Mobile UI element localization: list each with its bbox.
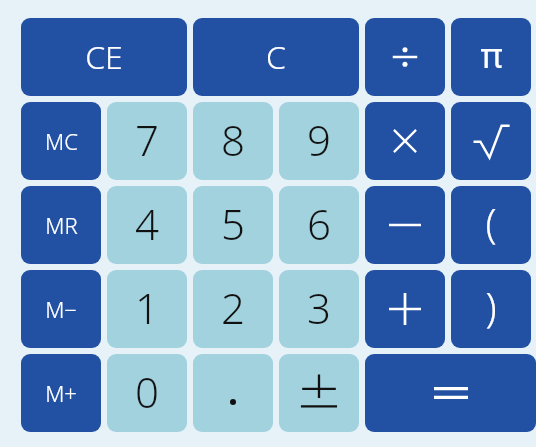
staticText: 8: [221, 111, 245, 168]
staticText: 5: [221, 195, 245, 252]
button[interactable]: Plus minus: [279, 354, 359, 432]
staticText: 0: [135, 363, 159, 420]
staticText: 6: [307, 195, 331, 252]
staticText: CE: [85, 35, 123, 79]
button[interactable]: M−: [21, 270, 101, 348]
button[interactable]: 6: [279, 186, 359, 264]
button[interactable]: (: [451, 186, 531, 264]
staticText: π: [480, 32, 503, 78]
button[interactable]: 0: [107, 354, 187, 432]
button[interactable]: 4: [107, 186, 187, 264]
staticText: C: [266, 35, 286, 79]
button[interactable]: 2: [193, 270, 273, 348]
button[interactable]: Decimal point: [193, 354, 273, 432]
staticText: ): [485, 279, 497, 333]
button[interactable]: MC: [21, 102, 101, 180]
staticText: 3: [307, 279, 331, 336]
button[interactable]: 5: [193, 186, 273, 264]
staticText: M+: [45, 378, 77, 408]
button[interactable]: Multiply: [365, 102, 445, 180]
staticText: M−: [45, 294, 77, 324]
staticText: 2: [221, 279, 245, 336]
button[interactable]: MR: [21, 186, 101, 264]
staticText: 1: [135, 279, 159, 336]
button[interactable]: 8: [193, 102, 273, 180]
staticText: (: [485, 195, 497, 249]
button[interactable]: Minus: [365, 186, 445, 264]
button[interactable]: Plus: [365, 270, 445, 348]
button[interactable]: M+: [21, 354, 101, 432]
button[interactable]: 3: [279, 270, 359, 348]
button[interactable]: ): [451, 270, 531, 348]
button[interactable]: 1: [107, 270, 187, 348]
button[interactable]: Divide: [365, 18, 445, 96]
staticText: MR: [45, 210, 78, 240]
staticText: 4: [135, 195, 159, 252]
button[interactable]: 7: [107, 102, 187, 180]
button[interactable]: 9: [279, 102, 359, 180]
staticText: MC: [45, 126, 78, 156]
button[interactable]: π: [451, 18, 531, 96]
staticText: 7: [135, 111, 159, 168]
button[interactable]: Square root: [451, 102, 531, 180]
button[interactable]: C: [193, 18, 359, 96]
button[interactable]: Equals: [365, 354, 536, 432]
staticText: 9: [307, 111, 331, 168]
button[interactable]: CE: [21, 18, 187, 96]
